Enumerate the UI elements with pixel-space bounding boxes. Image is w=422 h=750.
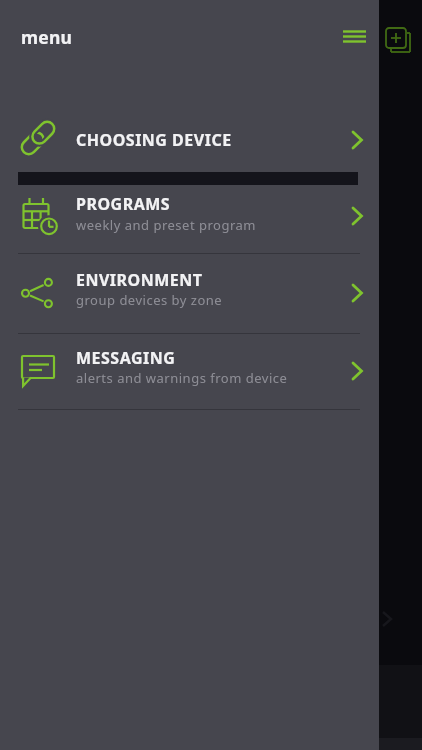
staticText: group devices by zone [76, 291, 223, 309]
button[interactable] [335, 22, 373, 52]
button[interactable] [383, 25, 415, 57]
button[interactable]: CHOOSING DEVICE [0, 106, 379, 172]
button[interactable]: PROGRAMS [0, 186, 379, 253]
staticText: alerts and warnings from device [76, 369, 288, 387]
staticText: MESSAGING [76, 347, 176, 369]
staticText: ENVIRONMENT [76, 269, 203, 291]
staticText: PROGRAMS [76, 193, 171, 215]
button[interactable]: MESSAGING [0, 334, 379, 409]
staticText: CHOOSING DEVICE [76, 129, 232, 151]
button[interactable]: ENVIRONMENT [0, 254, 379, 333]
staticText: menu [21, 25, 73, 49]
staticText: weekly and preset program [76, 216, 256, 234]
